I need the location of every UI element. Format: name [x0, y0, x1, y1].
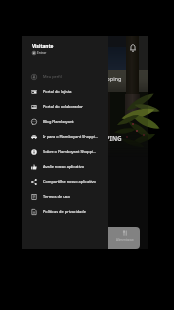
- button[interactable]: Portal do colaborador: [22, 99, 108, 114]
- button[interactable]: Lazer: [80, 227, 110, 249]
- staticText: Ir para o Flamboyant Shoppi...: [43, 134, 98, 139]
- staticText: Portal do lojista: [43, 89, 72, 94]
- staticText: Alimentacao: [116, 238, 134, 242]
- button[interactable]: Avalie nosso aplicativo: [22, 159, 108, 174]
- staticText: Entrar: [37, 51, 47, 55]
- staticText: Avalie nosso aplicativo: [43, 164, 85, 169]
- staticText: Meu perfil: [43, 74, 62, 79]
- staticText: Visitante: [32, 43, 54, 50]
- button[interactable]: Políticas de privacidade: [22, 204, 108, 219]
- button[interactable]: Termos de uso: [22, 189, 108, 204]
- button[interactable]: Entrar: [32, 51, 47, 55]
- button[interactable]: Alimentacao: [110, 227, 140, 249]
- staticText: Políticas de privacidade: [43, 209, 86, 214]
- button[interactable]: Notifications: [125, 40, 140, 55]
- staticText: Sobre o Flamboyant Shoppi...: [43, 149, 97, 154]
- staticText: Flamboyant Shopping: [64, 75, 122, 83]
- staticText: Portal do colaborador: [43, 104, 83, 109]
- button[interactable]: Sobre o Flamboyant Shoppi...: [22, 144, 108, 159]
- button[interactable]: Blog Flamboyant: [22, 114, 108, 129]
- staticText: Blog Flamboyant: [43, 119, 74, 124]
- staticText: Termos de uso: [43, 194, 70, 199]
- staticText: Compartilhe nosso aplicativo: [43, 179, 96, 184]
- button[interactable]: Portal do lojista: [22, 84, 108, 99]
- button[interactable]: Compartilhe nosso aplicativo: [22, 174, 108, 189]
- staticText: SHOPPING: [88, 134, 122, 143]
- button[interactable]: Ir para o Flamboyant Shoppi...: [22, 129, 108, 144]
- button[interactable]: Meu perfil: [22, 69, 108, 84]
